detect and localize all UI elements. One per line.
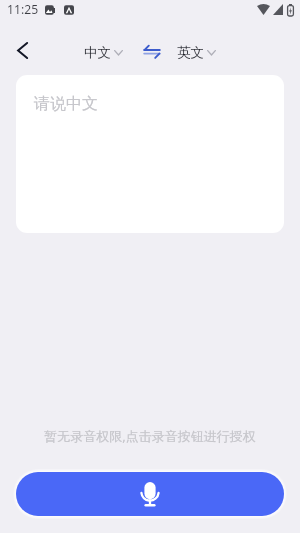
button[interactable]: 英文 [177, 44, 216, 61]
staticText: 请说中文 [34, 94, 98, 114]
button[interactable]: Swap languages [141, 41, 163, 63]
button[interactable]: 中文 [84, 44, 123, 61]
button[interactable]: Record [16, 472, 284, 516]
button[interactable]: Back [5, 34, 39, 68]
staticText: 暂无录音权限,点击录音按钮进行授权 [0, 427, 300, 445]
staticText: 11:25 [7, 1, 39, 18]
staticText: 英文 [177, 44, 204, 61]
staticText: 中文 [84, 44, 111, 61]
